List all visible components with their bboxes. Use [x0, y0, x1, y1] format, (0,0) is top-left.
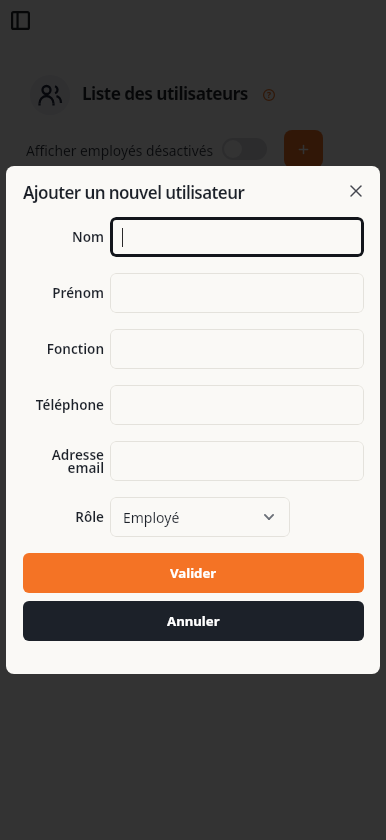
staticText: Nom — [72, 228, 104, 246]
button[interactable]: Ajouter un utilisateur — [284, 130, 323, 168]
staticText: Adresse email — [51, 446, 104, 477]
button[interactable] — [110, 441, 364, 481]
button[interactable] — [110, 329, 364, 369]
staticText: ? — [267, 89, 272, 101]
button[interactable] — [110, 385, 364, 425]
button[interactable]: Aide — [258, 84, 279, 105]
staticText: Afficher employés désactivés — [26, 141, 214, 160]
button[interactable] — [110, 273, 364, 313]
staticText: Rôle — [75, 508, 104, 526]
button[interactable]: Afficher employés désactivés — [222, 138, 267, 160]
staticText: Valider — [170, 564, 217, 582]
staticText: Liste des utilisateurs — [82, 82, 248, 105]
button[interactable]: Valider — [23, 553, 364, 593]
staticText: Prénom — [52, 284, 104, 302]
button[interactable]: Annuler — [23, 601, 364, 641]
button[interactable]: Employé — [110, 497, 290, 537]
staticText: Téléphone — [35, 396, 104, 414]
staticText: Ajouter un nouvel utilisateur — [23, 181, 245, 204]
staticText: Annuler — [167, 612, 220, 630]
staticText: Fonction — [46, 340, 104, 358]
button[interactable]: Fermer — [342, 177, 369, 204]
button[interactable] — [110, 217, 364, 257]
button[interactable]: Basculer la barre latérale — [6, 6, 34, 34]
staticText: Employé — [123, 508, 180, 527]
